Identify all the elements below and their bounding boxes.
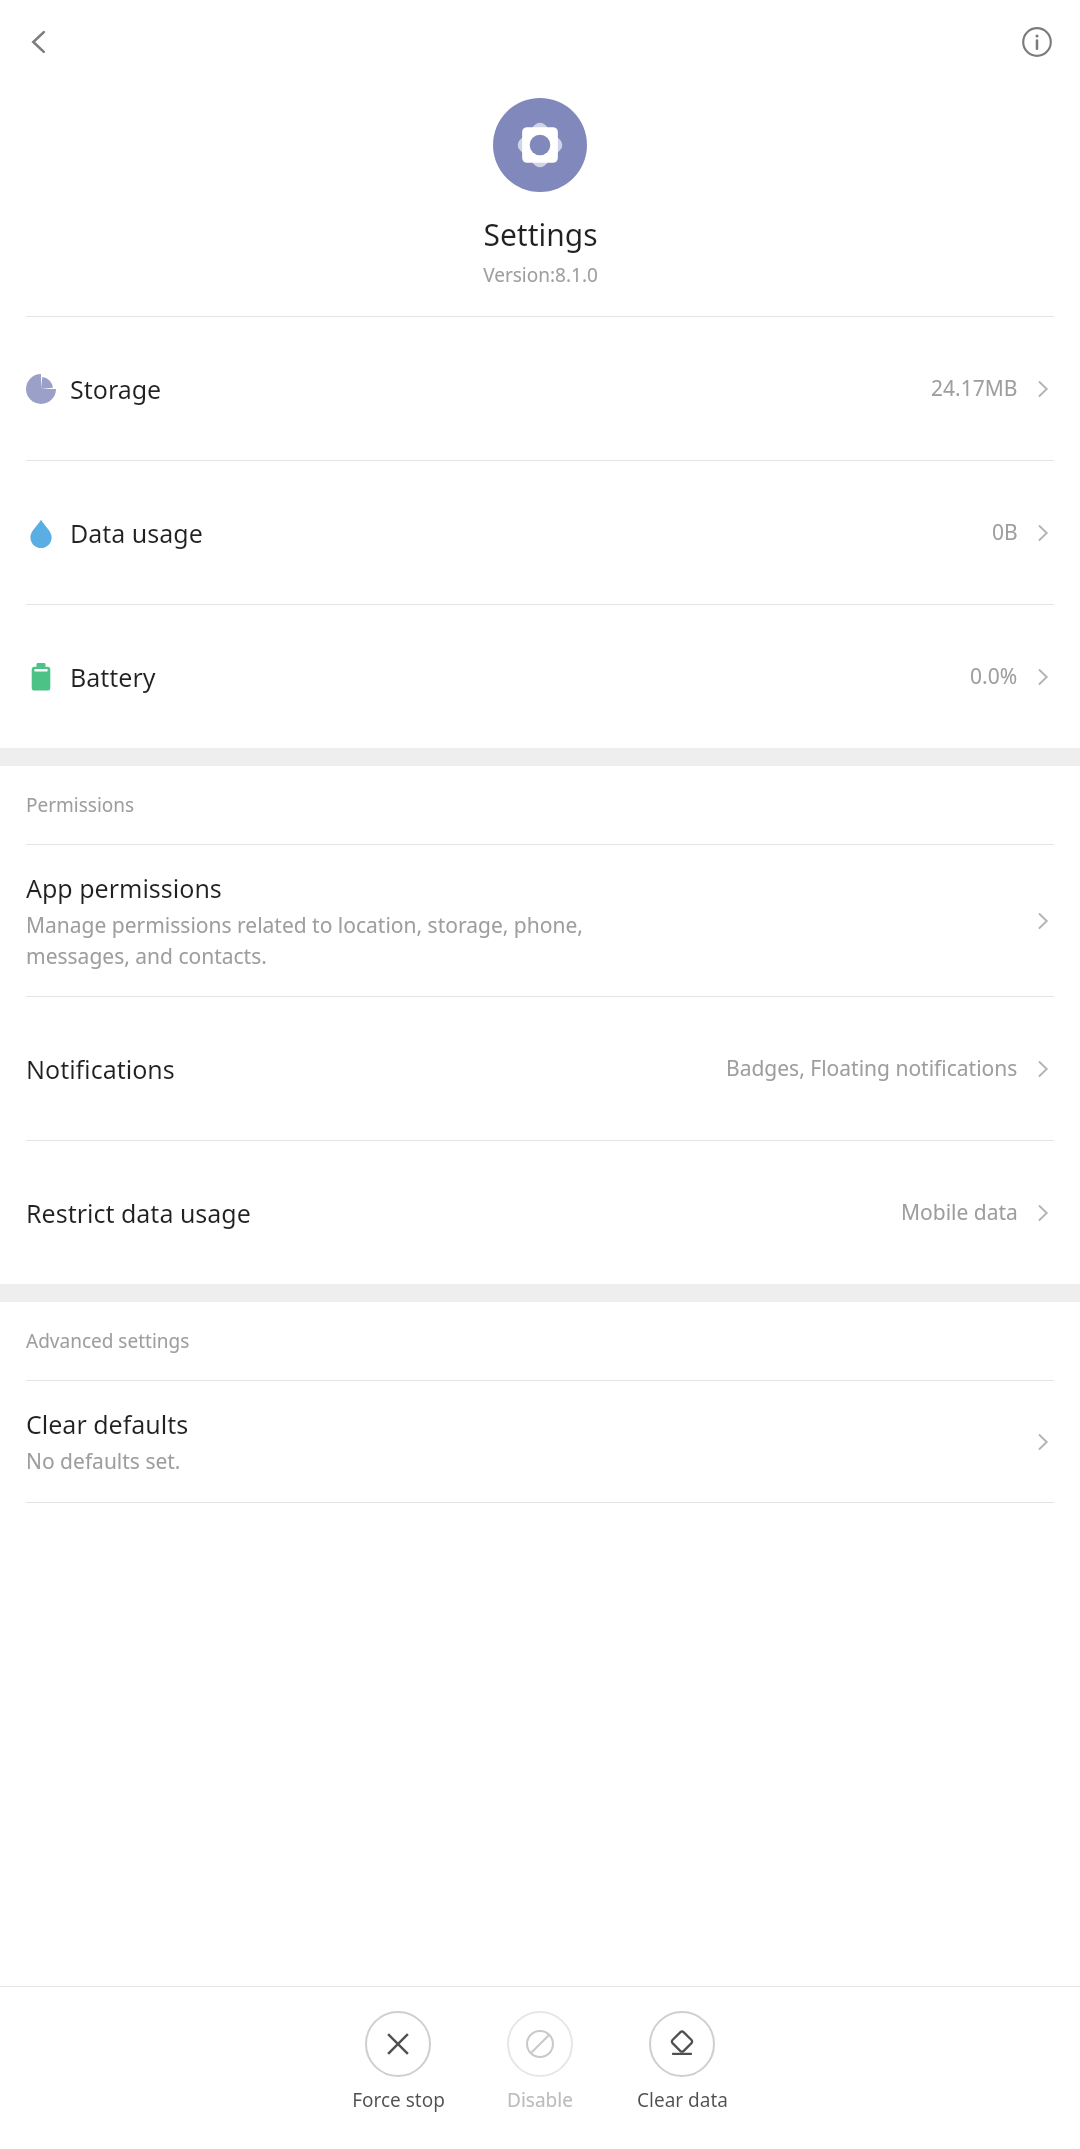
button[interactable]: Back (6, 9, 72, 75)
staticText: Badges, Floating notifications (726, 1054, 1018, 1083)
staticText: Notifications (26, 1052, 175, 1086)
staticText: Clear data (637, 2087, 728, 2113)
staticText: 24.17MB (931, 374, 1018, 403)
staticText: 0.0% (970, 662, 1018, 691)
staticText: Disable (507, 2087, 573, 2113)
staticText: Mobile data (901, 1198, 1018, 1227)
staticText: Manage permissions related to location, … (26, 911, 583, 970)
button[interactable]: Force stop (327, 2005, 469, 2119)
button[interactable]: Restrict data usage (0, 1141, 1080, 1284)
staticText: Data usage (70, 516, 203, 550)
button[interactable]: Disable (469, 2005, 611, 2119)
button[interactable]: App permissions (0, 845, 1080, 996)
button[interactable]: Battery (0, 605, 1080, 748)
staticText: Storage (70, 372, 162, 406)
button[interactable]: Clear defaults (0, 1381, 1080, 1502)
staticText: Version:8.1.0 (483, 262, 598, 288)
staticText: Advanced settings (26, 1328, 190, 1354)
staticText: Clear defaults (26, 1407, 189, 1441)
button[interactable]: App info (1004, 9, 1070, 75)
button[interactable]: Notifications (0, 997, 1080, 1140)
staticText: Restrict data usage (26, 1196, 251, 1230)
button[interactable]: Clear data (611, 2005, 753, 2119)
staticText: Settings (483, 214, 598, 255)
button[interactable]: Storage (0, 317, 1080, 460)
staticText: Battery (70, 660, 156, 694)
staticText: 0B (992, 518, 1018, 547)
staticText: Force stop (352, 2087, 445, 2113)
staticText: Permissions (26, 792, 135, 818)
staticText: App permissions (26, 871, 222, 905)
staticText: No defaults set. (26, 1447, 181, 1476)
button[interactable]: Data usage (0, 461, 1080, 604)
